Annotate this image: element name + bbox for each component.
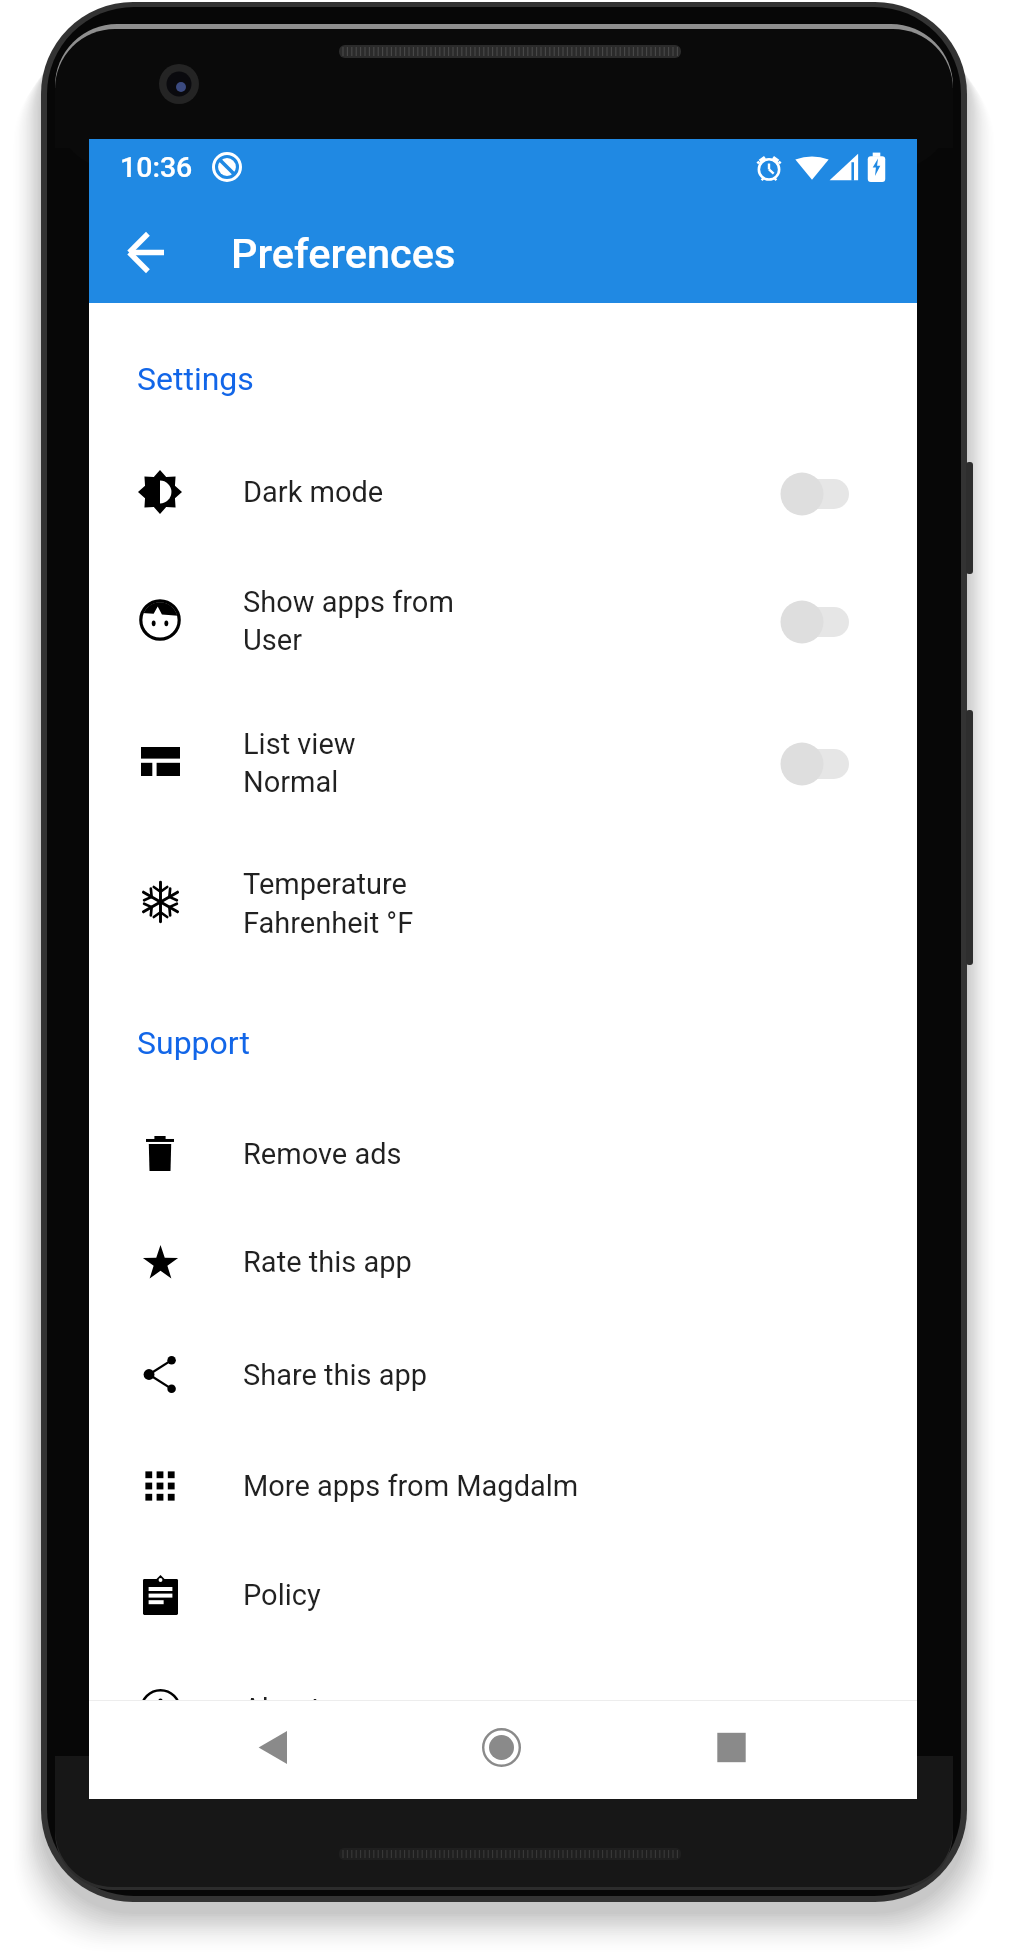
button[interactable]: Recent apps bbox=[683, 1699, 779, 1795]
staticText: Fahrenheit °F bbox=[243, 906, 414, 940]
staticText: About bbox=[243, 1692, 321, 1726]
staticText: 10:36 bbox=[120, 151, 193, 184]
staticText: Settings bbox=[137, 360, 254, 398]
staticText: List view bbox=[243, 727, 356, 761]
button[interactable] bbox=[89, 832, 917, 972]
button[interactable] bbox=[89, 1319, 917, 1430]
button[interactable] bbox=[89, 550, 917, 690]
button[interactable] bbox=[89, 436, 917, 548]
button[interactable]: Home bbox=[453, 1699, 549, 1795]
button[interactable]: Back bbox=[224, 1699, 320, 1795]
staticText: Dark mode bbox=[243, 475, 384, 509]
staticText: Rate this app bbox=[243, 1245, 412, 1279]
staticText: Normal bbox=[243, 765, 339, 799]
staticText: Policy bbox=[243, 1578, 321, 1612]
button[interactable] bbox=[89, 1539, 917, 1650]
button[interactable] bbox=[89, 1654, 917, 1765]
staticText: User bbox=[243, 623, 302, 657]
staticText: Temperature bbox=[243, 867, 407, 901]
button[interactable]: Toggle List view bbox=[767, 729, 867, 799]
button[interactable] bbox=[89, 1431, 917, 1542]
staticText: Show apps from bbox=[243, 585, 454, 619]
staticText: Remove ads bbox=[243, 1137, 402, 1171]
staticText: More apps from Magdalm bbox=[243, 1469, 579, 1503]
staticText: Support bbox=[137, 1024, 250, 1062]
staticText: Share this app bbox=[243, 1358, 428, 1392]
staticText: Preferences bbox=[231, 229, 456, 278]
button[interactable] bbox=[89, 1207, 917, 1318]
button[interactable] bbox=[89, 1098, 917, 1209]
button[interactable]: Toggle Show apps from bbox=[767, 587, 867, 657]
button[interactable] bbox=[89, 692, 917, 832]
button[interactable]: Toggle Dark mode bbox=[767, 459, 867, 529]
button[interactable]: Back bbox=[100, 206, 192, 298]
